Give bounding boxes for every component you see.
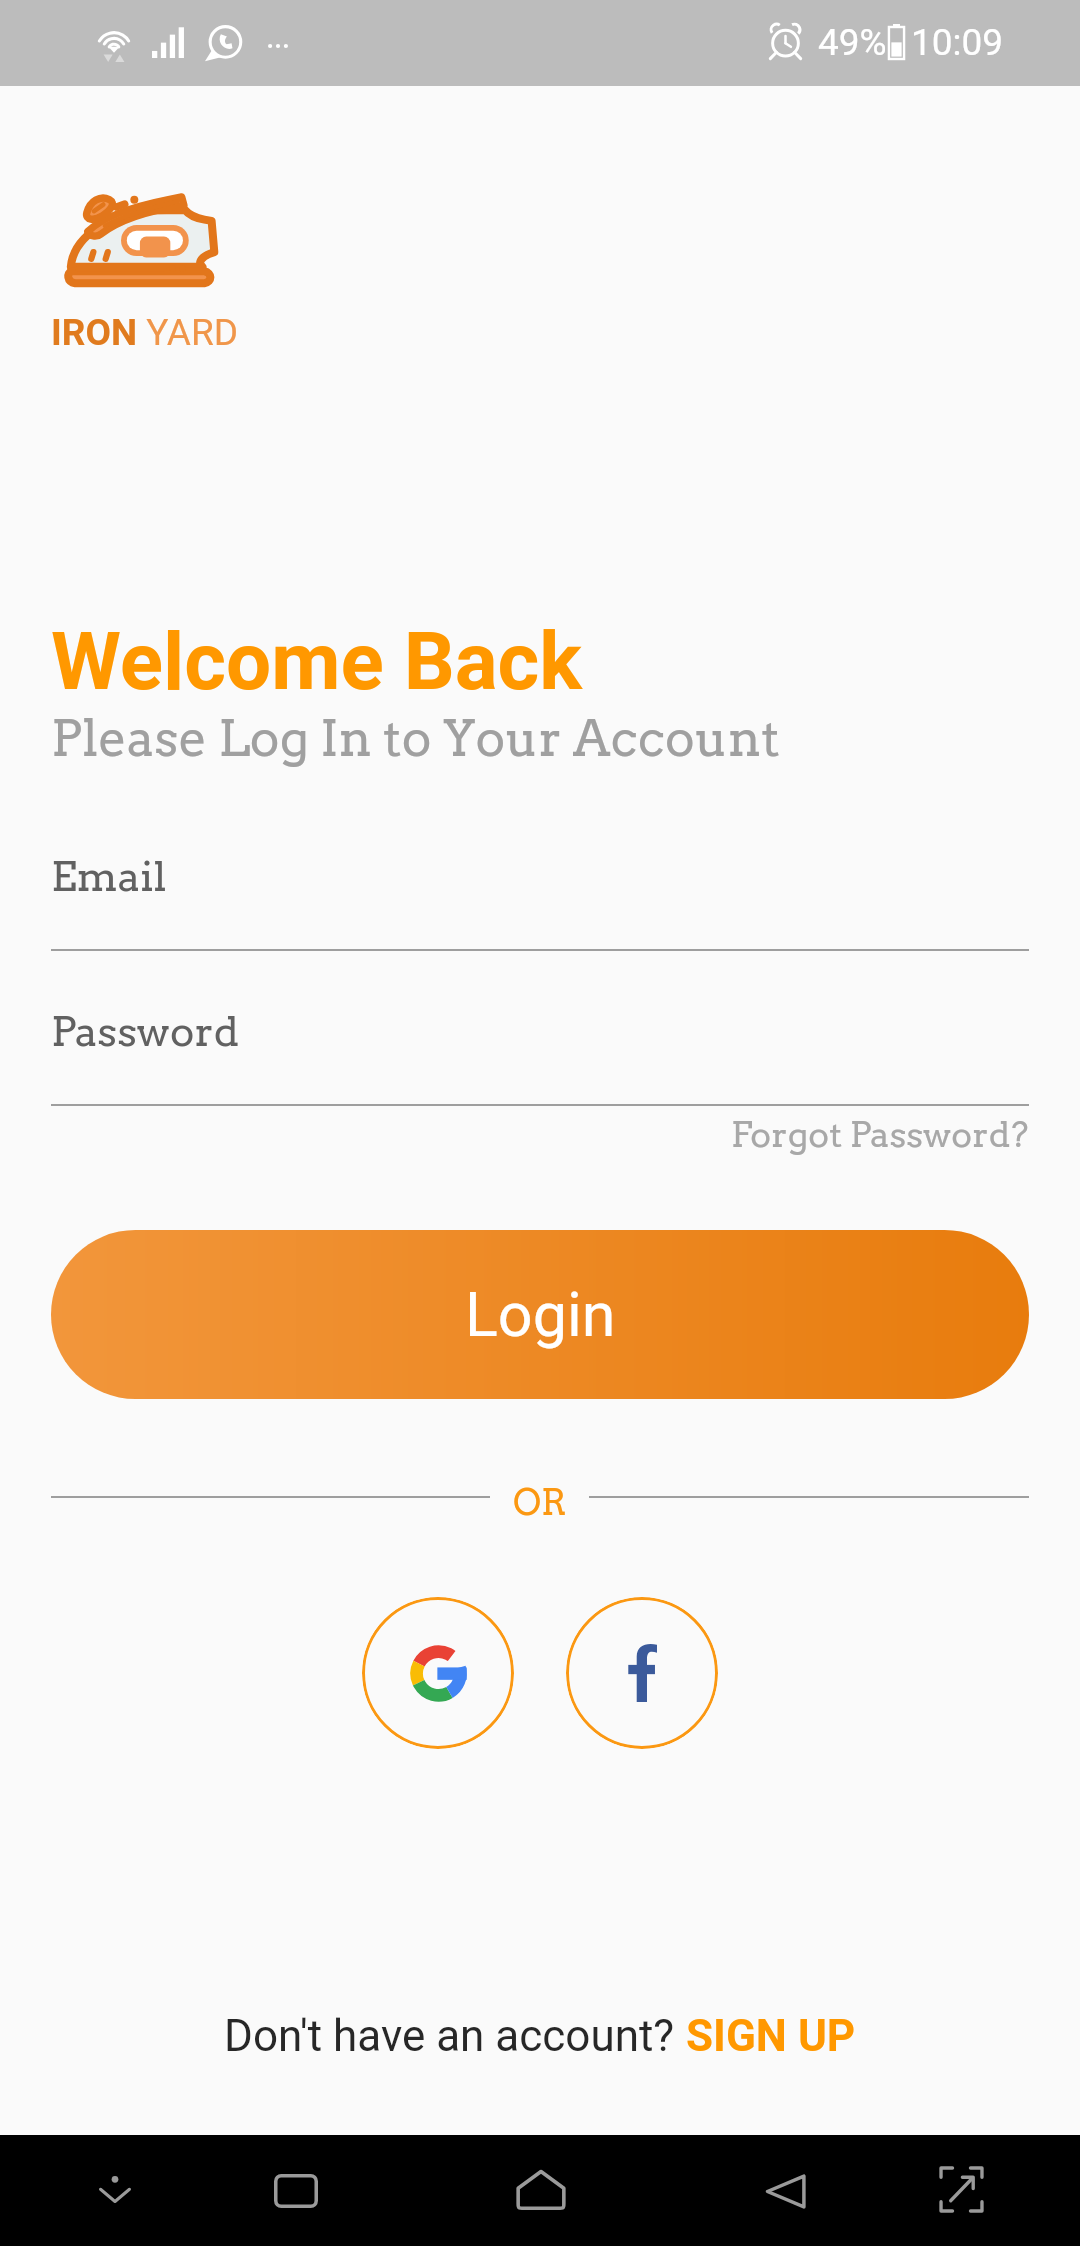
- staticText: 10:09: [911, 21, 1004, 64]
- button[interactable]: Sign in with Google: [362, 1597, 514, 1749]
- staticText: Password: [51, 1007, 240, 1057]
- staticText: 49%: [818, 21, 887, 64]
- button[interactable]: Hide keyboard: [77, 2149, 153, 2225]
- staticText: Email: [51, 852, 167, 902]
- button[interactable]: Recents: [252, 2152, 340, 2230]
- staticText: Please Log In to Your Account: [51, 708, 780, 768]
- button[interactable]: Home: [494, 2147, 588, 2232]
- button[interactable]: Back: [743, 2152, 828, 2231]
- button[interactable]: Forgot Password?: [731, 1113, 1029, 1155]
- button[interactable]: Full screen: [917, 2144, 1006, 2235]
- staticText: Welcome Back: [51, 615, 583, 709]
- button[interactable]: Sign in with Facebook: [566, 1597, 718, 1749]
- staticText: Don't have an account?: [224, 2010, 686, 2062]
- staticText: SIGN UP: [686, 2010, 856, 2062]
- staticText: IRON YARD: [51, 311, 239, 354]
- staticText: OR: [513, 1480, 567, 1523]
- staticText: Login: [465, 1279, 616, 1350]
- button[interactable]: Don't have an account?: [224, 2010, 856, 2062]
- button[interactable]: Login: [51, 1230, 1029, 1399]
